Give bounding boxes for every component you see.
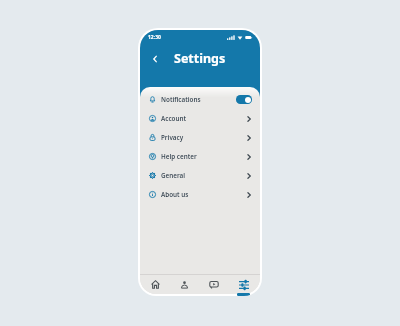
staticText: Account — [161, 114, 187, 123]
staticText: Notifications — [161, 95, 201, 104]
staticText: General — [161, 171, 186, 180]
button[interactable]: General — [149, 166, 252, 185]
button[interactable] — [229, 275, 259, 294]
button[interactable]: Help center — [149, 147, 252, 166]
staticText: Settings — [174, 50, 226, 67]
button[interactable]: Notifications — [149, 90, 252, 109]
button[interactable] — [199, 275, 229, 294]
button[interactable] — [141, 275, 170, 294]
button[interactable]: About us — [149, 185, 252, 204]
staticText: About us — [161, 190, 189, 199]
button[interactable]: Account — [149, 109, 252, 128]
button[interactable] — [170, 275, 199, 294]
staticText: Help center — [161, 152, 197, 161]
button[interactable]: Privacy — [149, 128, 252, 147]
button[interactable] — [152, 56, 158, 62]
staticText: 12:30 — [148, 34, 161, 41]
staticText: Privacy — [161, 133, 184, 142]
